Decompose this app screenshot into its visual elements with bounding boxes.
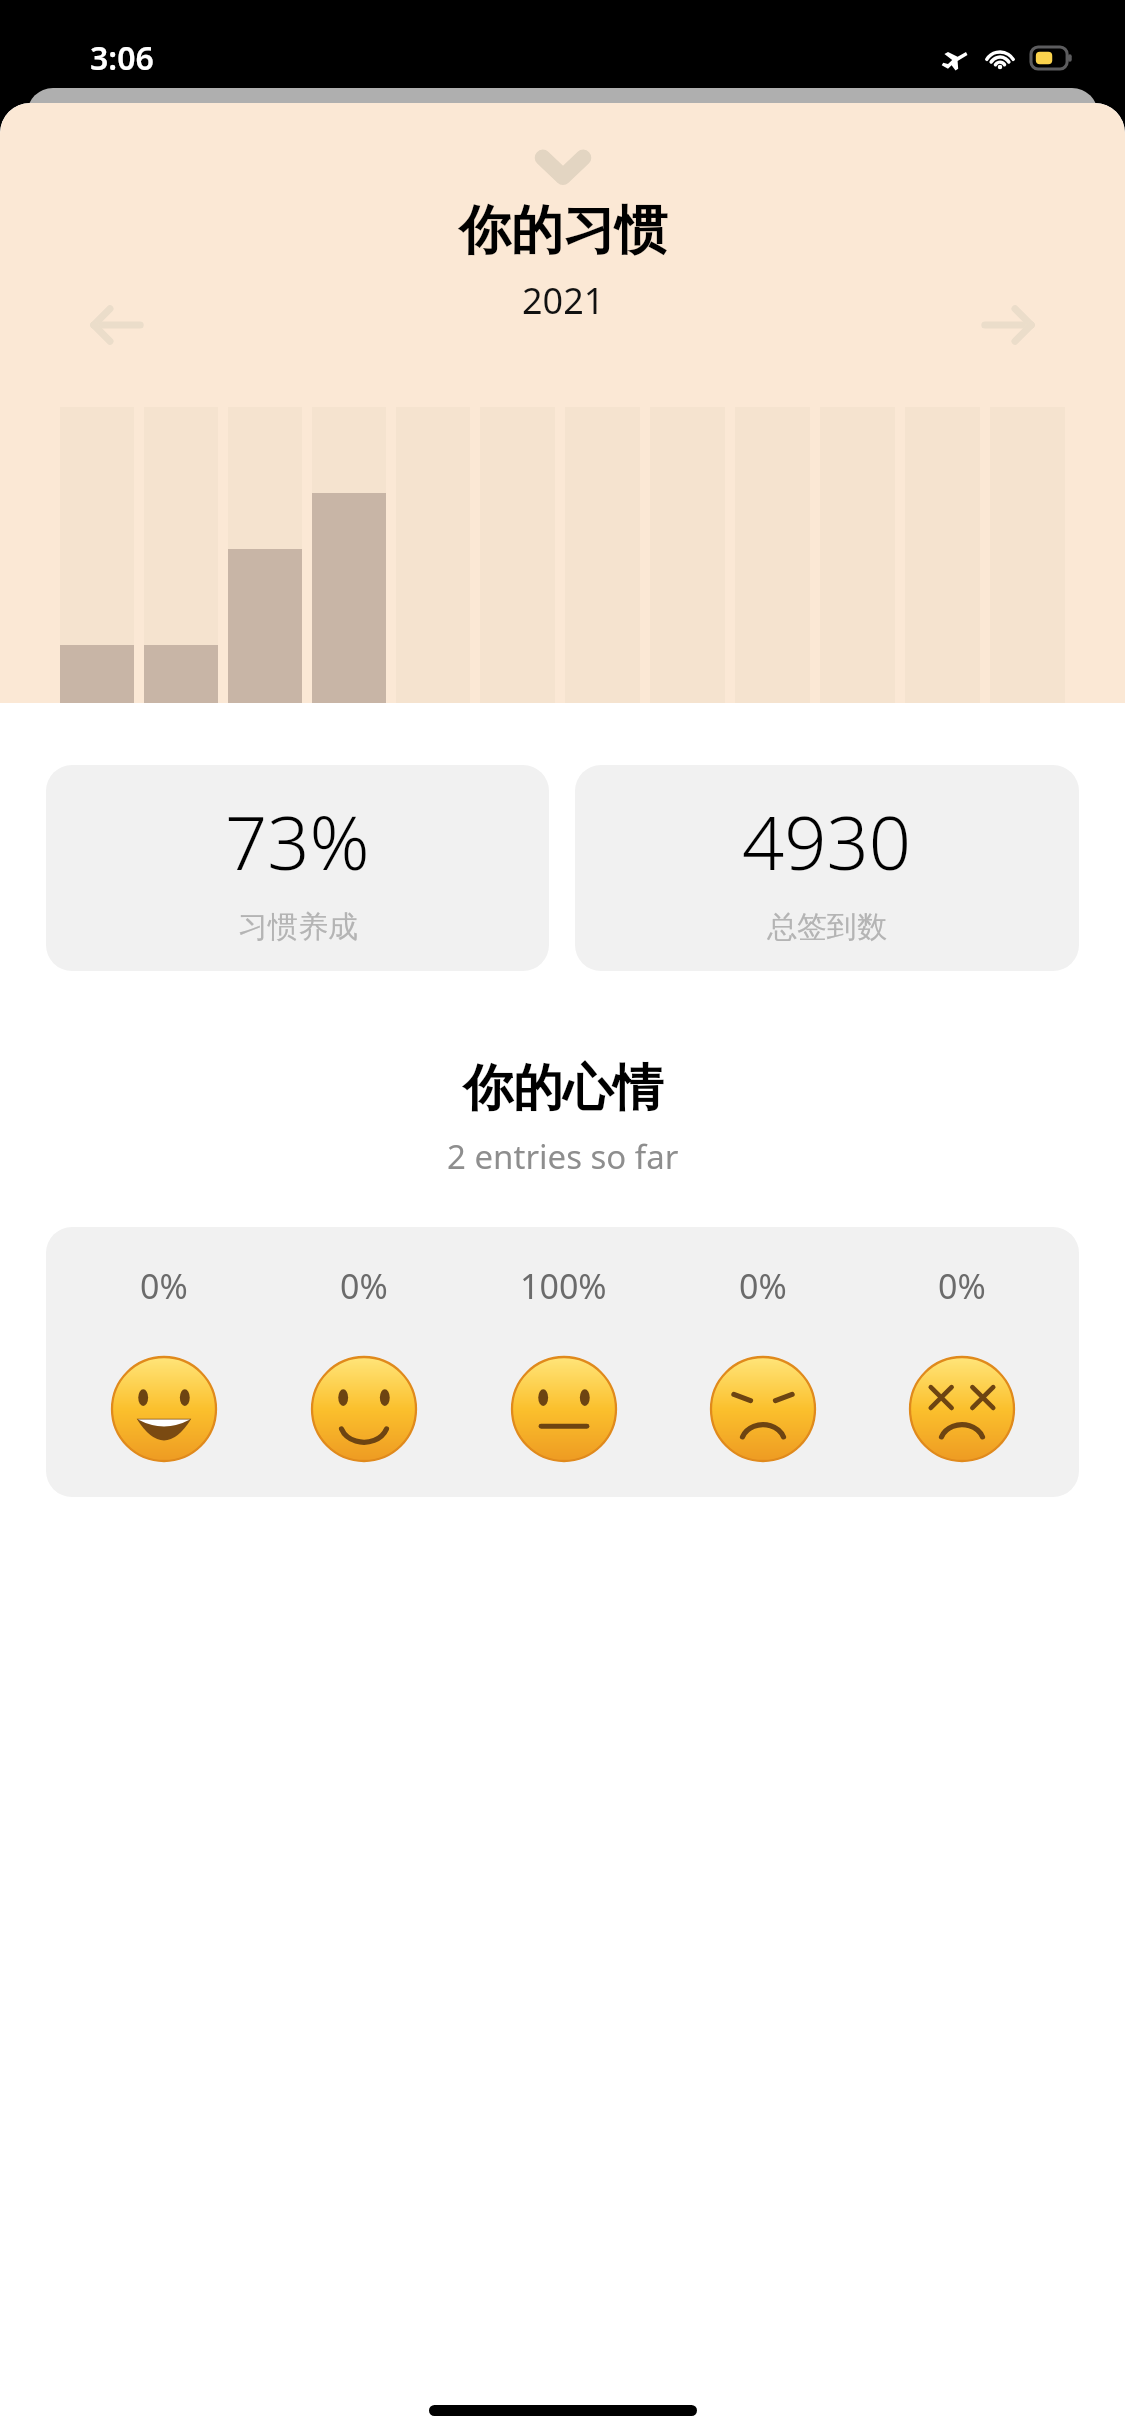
button[interactable]: Next year	[953, 280, 1063, 370]
staticText: 73%	[225, 791, 370, 892]
staticText: 总签到数	[767, 908, 887, 946]
staticText: 你的心情	[463, 1057, 663, 1120]
button[interactable]: 4930	[575, 765, 1079, 971]
staticText: 0%	[340, 1263, 388, 1309]
button[interactable]: Mood 1	[312, 1357, 416, 1461]
staticText: 0%	[739, 1263, 787, 1309]
staticText: 2021	[522, 276, 605, 325]
staticText: 100%	[520, 1263, 607, 1309]
button[interactable]	[60, 407, 134, 703]
button[interactable]: Mood 2	[512, 1357, 616, 1461]
staticText: 3:06	[90, 36, 154, 80]
staticText: 0%	[938, 1263, 986, 1309]
button[interactable]: Collapse	[518, 143, 608, 189]
button[interactable]: 73%	[46, 765, 549, 971]
button[interactable]: Previous year	[62, 280, 172, 370]
button[interactable]	[312, 407, 386, 703]
staticText: 2 entries so far	[447, 1134, 679, 1179]
button[interactable]: Mood 4	[910, 1357, 1014, 1461]
button[interactable]	[228, 407, 302, 703]
staticText: 你的习惯	[459, 198, 667, 264]
staticText: 4930	[742, 791, 912, 892]
button[interactable]: Mood 0	[112, 1357, 216, 1461]
staticText: 习惯养成	[238, 908, 358, 946]
button[interactable]: Mood 3	[711, 1357, 815, 1461]
staticText: 0%	[140, 1263, 188, 1309]
button[interactable]	[144, 407, 218, 703]
